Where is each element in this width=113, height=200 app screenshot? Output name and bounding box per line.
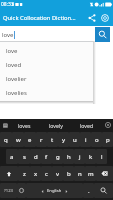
button[interactable]: z (18, 166, 30, 181)
button[interactable]: s (18, 149, 30, 164)
staticText: u (73, 136, 77, 144)
staticText: b (67, 170, 71, 178)
staticText: ▤ (3, 122, 8, 128)
button[interactable]: x (30, 166, 41, 181)
staticText: s (23, 153, 26, 161)
staticText: r (40, 136, 43, 144)
staticText: lovelies (6, 89, 27, 97)
staticText: j (79, 153, 81, 161)
staticText: loves (18, 122, 31, 129)
staticText: English (47, 188, 62, 194)
button[interactable]: f (41, 149, 52, 164)
button[interactable]: j (74, 149, 85, 164)
staticText: p (106, 136, 110, 144)
staticText: . (88, 187, 90, 195)
staticText: q (4, 136, 8, 144)
staticText: w (16, 136, 21, 144)
button[interactable]: o (91, 132, 102, 147)
staticText: h (67, 153, 71, 161)
button[interactable]: n (74, 166, 85, 181)
staticText: x (34, 170, 38, 178)
button[interactable]: ?123 (0, 183, 17, 198)
button[interactable]: e (24, 132, 36, 147)
button[interactable]: Search (95, 27, 110, 42)
staticText: loved (6, 61, 22, 69)
button[interactable]: About (98, 11, 111, 24)
button[interactable]: . (83, 183, 94, 198)
staticText: c (45, 170, 48, 178)
button[interactable]: Keyboard settings (102, 119, 113, 131)
button[interactable]: loved (0, 58, 93, 72)
button[interactable]: Shift (0, 166, 18, 181)
staticText: i (85, 136, 87, 144)
button[interactable]: g (52, 149, 63, 164)
button[interactable]: Space (26, 183, 83, 198)
button[interactable]: b (63, 166, 74, 181)
button[interactable]: w (12, 132, 24, 147)
button[interactable]: i (80, 132, 91, 147)
staticText: k (89, 153, 93, 161)
staticText: loved (80, 122, 94, 129)
staticText: a (10, 153, 14, 161)
button[interactable]: lovely (40, 119, 71, 131)
button[interactable]: m (85, 166, 96, 181)
button[interactable]: y (58, 132, 69, 147)
staticText: 08:33 (1, 1, 14, 8)
staticText: v (56, 170, 60, 178)
button[interactable]: Backspace (96, 166, 113, 181)
button[interactable]: a (6, 149, 18, 164)
staticText: n (78, 170, 82, 178)
button[interactable]: p (102, 132, 113, 147)
button[interactable]: Search (94, 183, 113, 198)
button[interactable]: d (30, 149, 41, 164)
button[interactable]: lovelier (0, 72, 93, 86)
staticText: m (88, 170, 94, 178)
button[interactable]: loved (71, 119, 102, 131)
button[interactable]: r (36, 132, 47, 147)
staticText: o (95, 136, 99, 144)
staticText: t (51, 136, 54, 144)
staticText: lovely (49, 122, 63, 129)
staticText: y (62, 136, 66, 144)
staticText: f (45, 153, 48, 161)
button[interactable]: q (0, 132, 12, 147)
staticText: love (6, 47, 18, 55)
staticText: z (23, 170, 26, 178)
button[interactable]: k (85, 149, 96, 164)
staticText: lovelier (6, 75, 27, 83)
button[interactable]: u (69, 132, 80, 147)
staticText: Quick Collocation Diction… (3, 14, 76, 22)
button[interactable]: t (47, 132, 58, 147)
button[interactable]: Clipboard (0, 119, 10, 131)
button[interactable]: loves (8, 119, 40, 131)
button[interactable]: h (63, 149, 74, 164)
staticText: g (56, 153, 60, 161)
staticText: e (28, 136, 32, 144)
button[interactable]: love (0, 44, 93, 58)
button[interactable]: l (96, 149, 107, 164)
button[interactable]: Emoji (17, 183, 26, 198)
button[interactable]: c (41, 166, 52, 181)
staticText: love (2, 31, 14, 39)
staticText: d (34, 153, 38, 161)
button[interactable]: v (52, 166, 63, 181)
button[interactable]: lovelies (0, 86, 93, 100)
staticText: ?123 (4, 188, 14, 194)
staticText: l (101, 153, 103, 161)
button[interactable]: Share (85, 11, 98, 24)
